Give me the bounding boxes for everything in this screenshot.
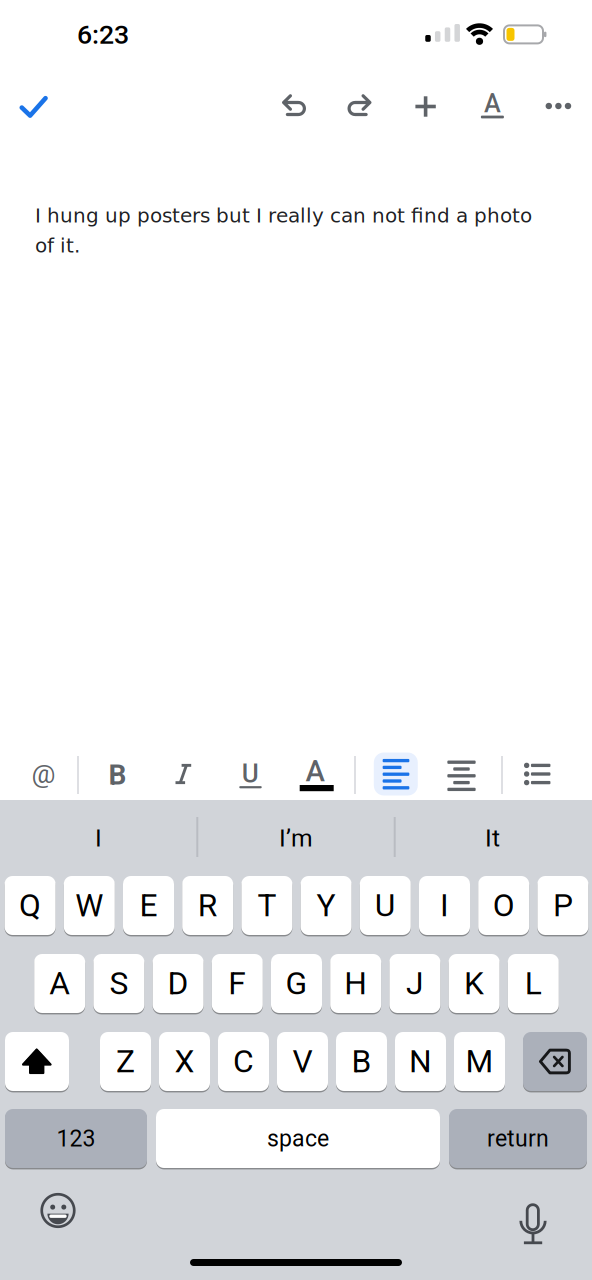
staticText: return: [487, 1125, 549, 1152]
button[interactable]: [374, 752, 418, 795]
button[interactable]: [534, 82, 582, 130]
staticText: D: [168, 965, 189, 1002]
button[interactable]: I’m: [206, 808, 386, 868]
button[interactable]: [271, 81, 319, 129]
staticText: P: [553, 887, 573, 924]
button[interactable]: D: [153, 953, 204, 1014]
staticText: R: [198, 887, 218, 924]
staticText: V: [292, 1043, 312, 1080]
staticText: space: [267, 1125, 329, 1152]
staticText: U: [375, 887, 396, 924]
button[interactable]: U: [360, 875, 411, 936]
button[interactable]: A: [468, 82, 516, 130]
staticText: J: [406, 965, 424, 1002]
staticText: G: [285, 965, 307, 1002]
button[interactable]: [34, 1186, 82, 1234]
button[interactable]: Z: [100, 1031, 151, 1092]
staticText: I’m: [279, 823, 313, 852]
button[interactable]: R: [182, 875, 233, 936]
button[interactable]: O: [478, 875, 529, 936]
button[interactable]: C: [218, 1031, 269, 1092]
staticText: B: [108, 759, 126, 791]
staticText: X: [174, 1043, 194, 1080]
staticText: N: [409, 1043, 432, 1080]
staticText: A: [484, 89, 501, 118]
button[interactable]: Y: [301, 875, 352, 936]
button[interactable]: B: [336, 1031, 387, 1092]
button[interactable]: [523, 1031, 587, 1092]
staticText: O: [493, 887, 515, 924]
button[interactable]: [9, 83, 57, 131]
staticText: L: [525, 965, 542, 1002]
button[interactable]: [160, 751, 206, 797]
staticText: U: [242, 758, 259, 789]
staticText: Z: [116, 1043, 135, 1080]
button[interactable]: It: [402, 808, 582, 868]
button[interactable]: A: [34, 953, 85, 1014]
staticText: F: [228, 965, 246, 1002]
staticText: It: [485, 823, 500, 852]
staticText: E: [139, 887, 157, 924]
button[interactable]: J: [389, 953, 440, 1014]
button[interactable]: A: [293, 753, 339, 799]
staticText: Y: [317, 887, 336, 924]
staticText: M: [465, 1043, 493, 1080]
staticText: H: [344, 965, 367, 1002]
button[interactable]: space: [156, 1108, 440, 1169]
button[interactable]: U: [227, 753, 273, 799]
button[interactable]: W: [64, 875, 115, 936]
button[interactable]: K: [449, 953, 500, 1014]
button[interactable]: G: [271, 953, 322, 1014]
button[interactable]: I: [419, 875, 470, 936]
button[interactable]: [402, 82, 450, 130]
staticText: W: [75, 887, 103, 924]
staticText: A: [49, 965, 70, 1002]
button[interactable]: M: [454, 1031, 505, 1092]
staticText: K: [464, 965, 484, 1002]
button[interactable]: B: [94, 752, 140, 798]
staticText: B: [351, 1043, 371, 1080]
button[interactable]: L: [508, 953, 559, 1014]
staticText: T: [257, 887, 276, 924]
staticText: @: [31, 758, 55, 790]
button[interactable]: P: [537, 875, 588, 936]
button[interactable]: [5, 1031, 69, 1092]
button[interactable]: N: [395, 1031, 446, 1092]
staticText: I: [95, 823, 102, 852]
button[interactable]: [514, 751, 560, 797]
button[interactable]: F: [212, 953, 263, 1014]
button[interactable]: I: [8, 808, 188, 868]
staticText: I: [440, 887, 449, 924]
button[interactable]: @: [20, 751, 66, 797]
button[interactable]: return: [449, 1108, 587, 1169]
staticText: of it.: [35, 234, 80, 257]
button[interactable]: Q: [5, 875, 56, 936]
staticText: I hung up posters but I really can not f…: [35, 204, 532, 227]
staticText: A: [306, 754, 325, 788]
staticText: 6:23: [77, 19, 129, 50]
button[interactable]: 123: [5, 1108, 147, 1169]
button[interactable]: V: [277, 1031, 328, 1092]
button[interactable]: [509, 1200, 557, 1248]
button[interactable]: S: [93, 953, 144, 1014]
staticText: Q: [19, 887, 41, 924]
button[interactable]: [334, 81, 382, 129]
staticText: S: [109, 965, 128, 1002]
button[interactable]: X: [159, 1031, 210, 1092]
button[interactable]: H: [330, 953, 381, 1014]
button[interactable]: [438, 753, 484, 799]
button[interactable]: T: [241, 875, 292, 936]
staticText: C: [233, 1043, 254, 1080]
button[interactable]: E: [123, 875, 174, 936]
staticText: 123: [56, 1125, 95, 1152]
